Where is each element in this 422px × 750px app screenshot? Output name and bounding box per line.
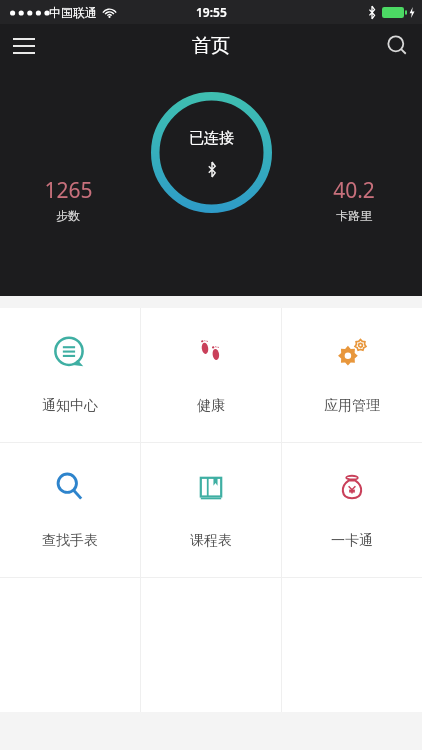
staticText: 健康: [197, 397, 225, 415]
staticText: 首页: [192, 34, 230, 58]
button[interactable]: 通知中心: [0, 308, 140, 442]
staticText: 卡路里: [336, 208, 372, 223]
button[interactable]: 应用管理: [282, 308, 422, 442]
staticText: 1265: [44, 176, 93, 205]
staticText: 查找手表: [42, 532, 98, 550]
staticText: 步数: [56, 208, 80, 223]
staticText: 中国联通: [49, 5, 97, 20]
staticText: 一卡通: [331, 532, 373, 550]
staticText: 通知中心: [42, 397, 98, 415]
button[interactable]: 一卡通: [282, 443, 422, 577]
staticText: 已连接: [189, 129, 234, 148]
button[interactable]: Connection status: [151, 92, 272, 213]
button[interactable]: 课程表: [141, 443, 281, 577]
staticText: 19:55: [196, 4, 227, 20]
staticText: 应用管理: [324, 397, 380, 415]
button[interactable]: 1265: [0, 176, 136, 223]
staticText: 40.2: [333, 176, 375, 205]
button[interactable]: 查找手表: [0, 443, 140, 577]
staticText: 课程表: [190, 532, 232, 550]
button[interactable]: 健康: [141, 308, 281, 442]
button[interactable]: 40.2: [286, 176, 422, 223]
button[interactable]: Search: [374, 24, 422, 68]
button[interactable]: Menu: [0, 24, 48, 68]
